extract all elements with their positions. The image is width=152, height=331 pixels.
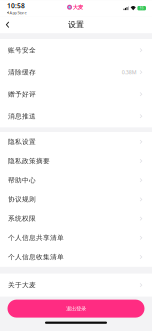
- button[interactable]: 消息推送: [0, 105, 152, 127]
- staticText: 10:58: [7, 1, 25, 10]
- staticText: 系统权限: [8, 214, 36, 223]
- staticText: App Store: [9, 10, 26, 15]
- button[interactable]: Back: [0, 17, 15, 32]
- button[interactable]: 个人信息收集清单: [0, 247, 152, 267]
- staticText: 个人信息收集清单: [8, 253, 64, 261]
- staticText: 0.38M: [122, 69, 137, 76]
- button[interactable]: 退出登录: [7, 300, 144, 318]
- staticText: 消息推送: [8, 112, 36, 120]
- staticText: 赠予好评: [8, 90, 36, 98]
- staticText: 账号安全: [8, 46, 36, 54]
- button[interactable]: 隐私政策摘要: [0, 151, 152, 171]
- staticText: 协议规则: [8, 195, 36, 203]
- staticText: 大麦: [73, 4, 83, 10]
- button[interactable]: 赠予好评: [0, 83, 152, 105]
- staticText: 设置: [68, 20, 84, 30]
- staticText: 帮助中心: [8, 176, 36, 184]
- staticText: 隐私设置: [8, 138, 36, 146]
- button[interactable]: 帮助中心: [0, 171, 152, 190]
- button[interactable]: 隐私设置: [0, 132, 152, 151]
- staticText: 隐私政策摘要: [8, 157, 50, 165]
- staticText: 93: [140, 6, 144, 10]
- button[interactable]: 协议规则: [0, 190, 152, 209]
- button[interactable]: 个人信息共享清单: [0, 228, 152, 247]
- staticText: 退出登录: [66, 305, 86, 312]
- button[interactable]: 关于大麦: [0, 274, 152, 297]
- button[interactable]: 清除缓存: [0, 61, 152, 83]
- staticText: 清除缓存: [8, 68, 36, 76]
- staticText: 关于大麦: [8, 281, 36, 289]
- button[interactable]: 账号安全: [0, 39, 152, 61]
- button[interactable]: 系统权限: [0, 209, 152, 228]
- staticText: 个人信息共享清单: [8, 234, 64, 242]
